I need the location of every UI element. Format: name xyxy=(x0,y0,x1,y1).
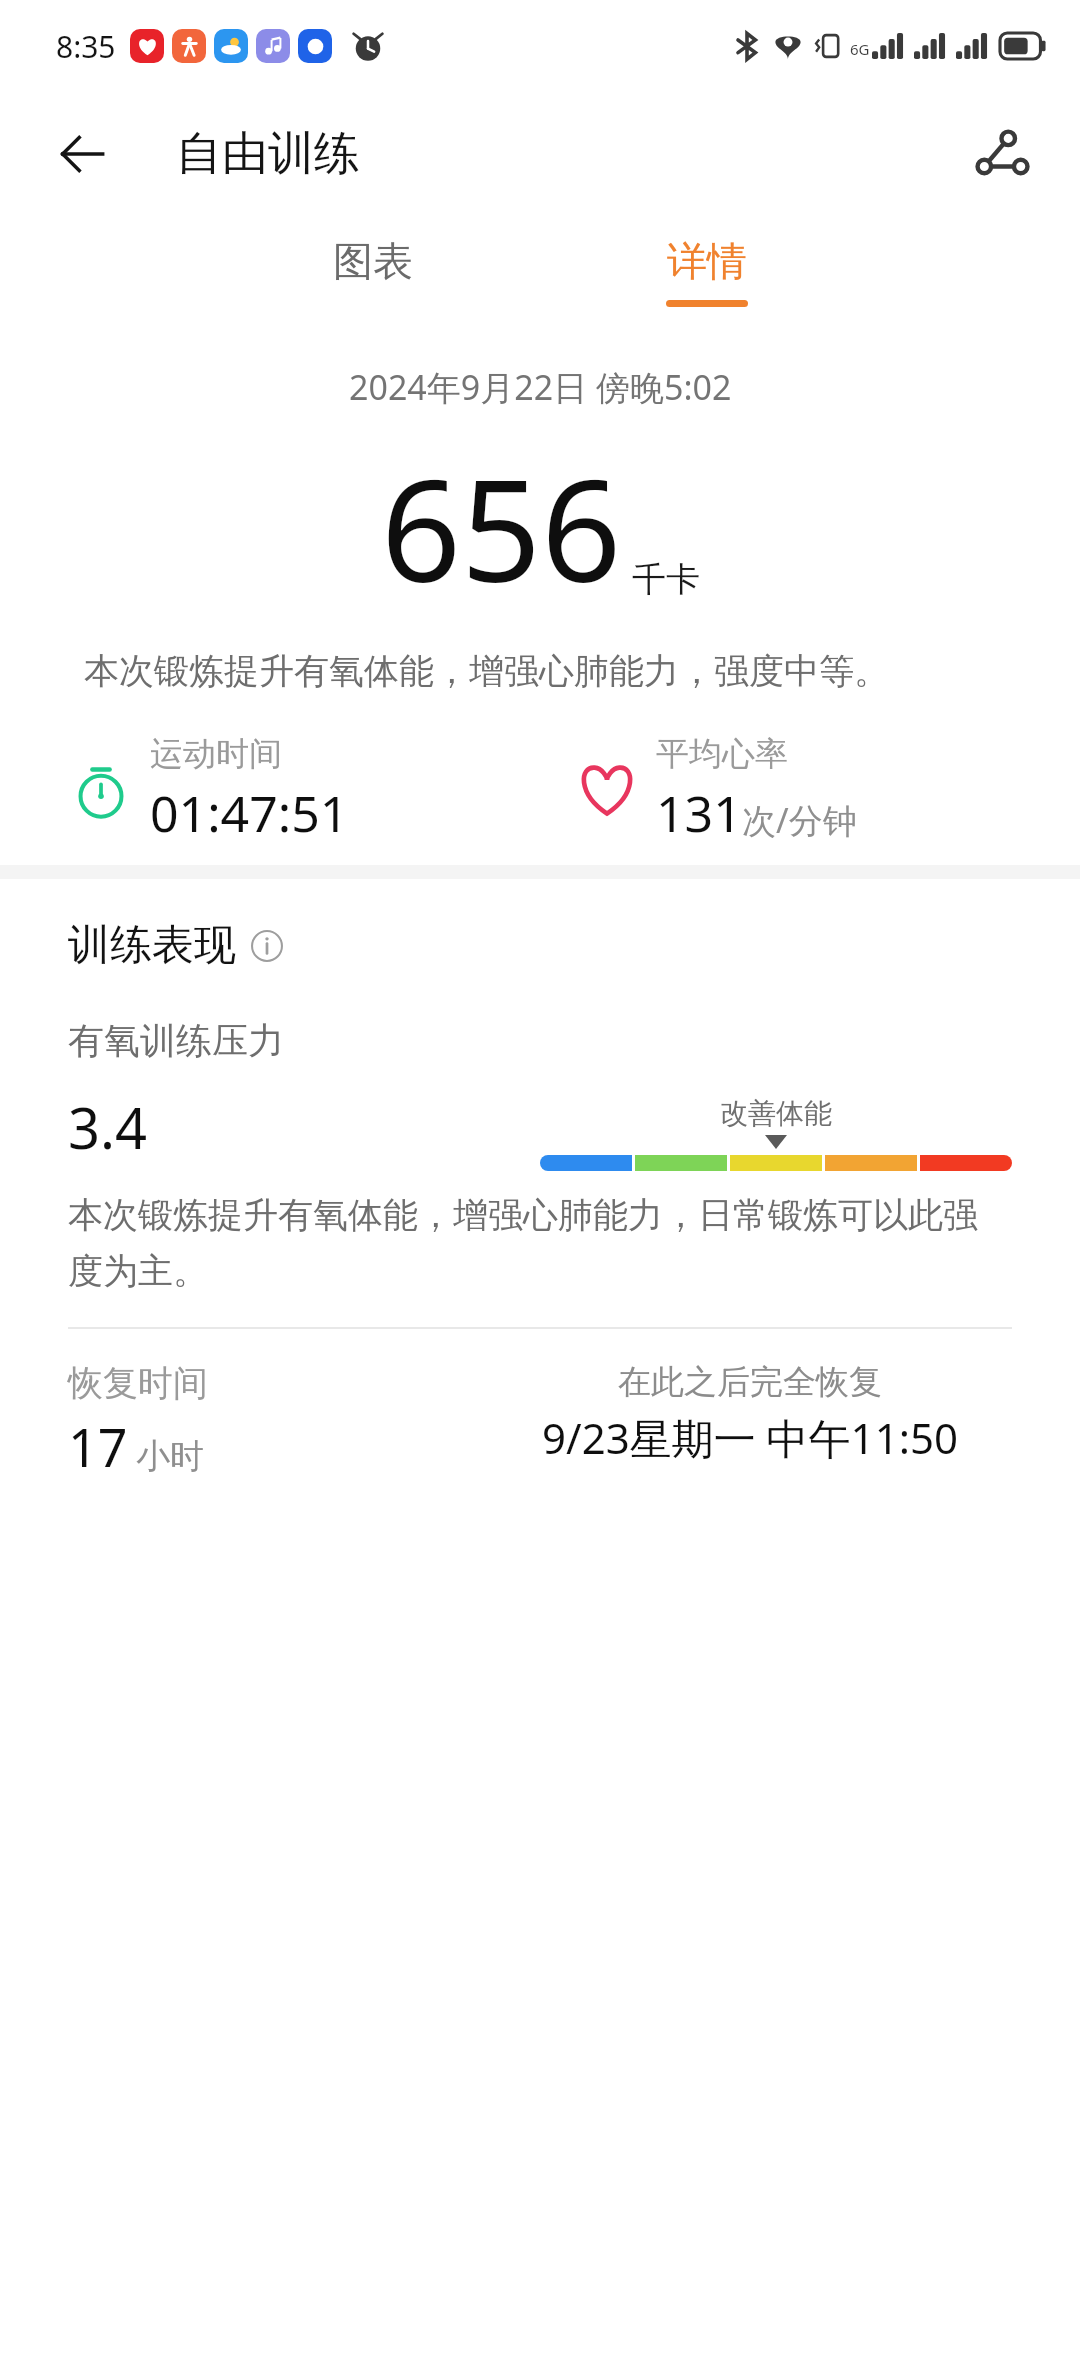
button[interactable]: Back xyxy=(46,118,118,190)
staticText: 3.4 xyxy=(68,1089,148,1165)
staticText: 656 xyxy=(381,432,622,623)
staticText: 图表 xyxy=(333,236,413,286)
button[interactable]: 平均心率 xyxy=(574,733,1080,847)
staticText: 17 xyxy=(68,1411,128,1482)
staticText: 有氧训练压力 xyxy=(68,1018,284,1063)
staticText: 131 xyxy=(656,779,742,847)
button[interactable]: 运动时间 xyxy=(68,733,574,847)
button[interactable]: 训练表现 xyxy=(68,919,284,972)
staticText: 本次锻炼提升有氧体能，增强心肺能力，日常锻炼可以此强度为主。 xyxy=(68,1193,1012,1293)
staticText: 小时 xyxy=(136,1435,204,1478)
staticText: 千卡 xyxy=(632,558,700,601)
staticText: 自由训练 xyxy=(176,125,360,183)
staticText: 运动时间 xyxy=(150,733,282,775)
staticText: 平均心率 xyxy=(656,733,788,775)
staticText: 01:47:51 xyxy=(150,779,349,847)
staticText: 改善体能 xyxy=(720,1096,832,1131)
button[interactable]: 图表 xyxy=(303,216,443,338)
staticText: 训练表现 xyxy=(68,919,236,972)
staticText: 详情 xyxy=(667,236,747,286)
staticText: 次/分钟 xyxy=(742,797,857,843)
button[interactable]: Share xyxy=(964,116,1040,192)
staticText: 9/23星期一 中午11:50 xyxy=(542,1409,958,1466)
staticText: 6G xyxy=(850,39,870,59)
button[interactable]: 详情 xyxy=(637,216,777,338)
staticText: 2024年9月22日 傍晚5:02 xyxy=(349,364,732,410)
staticText: 本次锻炼提升有氧体能，增强心肺能力，强度中等。 xyxy=(84,649,889,693)
staticText: 在此之后完全恢复 xyxy=(618,1361,882,1403)
staticText: 恢复时间 xyxy=(68,1361,208,1405)
staticText: 8:35 xyxy=(56,26,116,67)
